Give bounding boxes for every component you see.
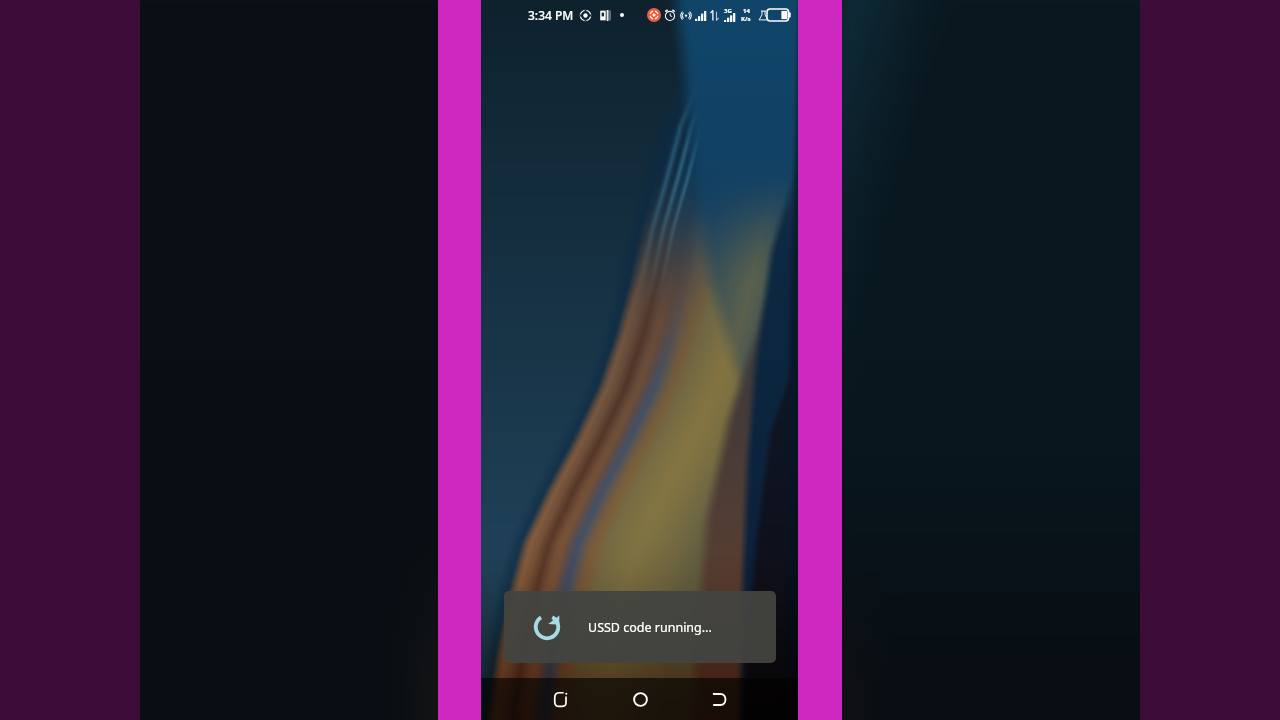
staticText: USSD code running...: [588, 619, 712, 636]
staticText: 3G: [724, 7, 732, 15]
staticText: K/s: [741, 15, 751, 23]
staticText: 14: [743, 7, 750, 15]
button[interactable]: Recent apps: [540, 678, 582, 720]
button[interactable]: Back: [699, 678, 741, 720]
button[interactable]: Home: [619, 678, 661, 720]
staticText: 3:34 PM: [528, 7, 574, 23]
button[interactable]: USSD code running...: [504, 591, 776, 663]
